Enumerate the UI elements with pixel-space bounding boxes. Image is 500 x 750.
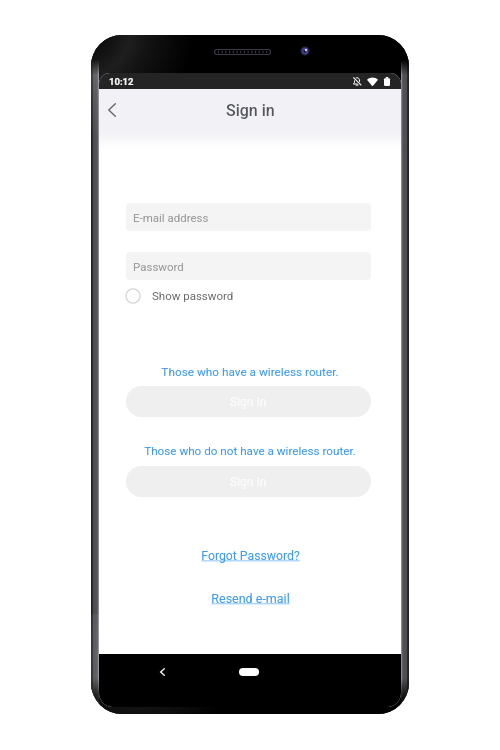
staticText: Sign In <box>230 475 267 489</box>
button[interactable]: Forgot Password? <box>99 543 401 569</box>
staticText: Forgot Password? <box>201 549 300 563</box>
staticText: Those who have a wireless router. <box>161 365 339 379</box>
staticText: 10:12 <box>109 76 134 87</box>
staticText: Those who do not have a wireless router. <box>144 444 356 458</box>
button[interactable]: Home <box>239 668 259 676</box>
button[interactable]: Show password <box>124 286 234 305</box>
staticText: Sign in <box>226 101 275 120</box>
staticText: Show password <box>152 289 234 302</box>
button[interactable]: Password <box>126 252 371 280</box>
button[interactable]: Back <box>148 658 176 686</box>
staticText: Password <box>133 260 184 273</box>
button[interactable]: E-mail address <box>126 203 371 231</box>
staticText: E-mail address <box>133 211 209 224</box>
staticText: Resend e-mail <box>211 591 290 606</box>
button[interactable]: Resend e-mail <box>99 585 401 611</box>
button[interactable]: Back <box>99 89 129 133</box>
staticText: Sign In <box>230 395 267 409</box>
